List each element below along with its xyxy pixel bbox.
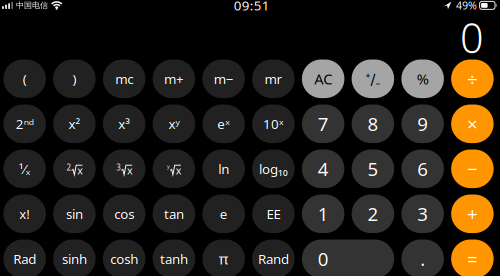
staticText: cosh bbox=[110, 250, 138, 268]
staticText: tan bbox=[164, 205, 184, 223]
button[interactable]: plus minus bbox=[352, 59, 394, 98]
button[interactable]: 9 bbox=[401, 104, 444, 143]
button[interactable]: tan bbox=[153, 194, 195, 233]
button[interactable]: x to the y bbox=[153, 104, 195, 143]
button[interactable]: m+ bbox=[153, 59, 195, 98]
staticText: sinh bbox=[62, 250, 87, 268]
button[interactable]: e bbox=[202, 194, 245, 233]
button[interactable]: pi bbox=[202, 239, 245, 276]
staticText: ʸ bbox=[167, 162, 170, 173]
staticText: 2 bbox=[367, 201, 378, 226]
button[interactable]: EE bbox=[252, 194, 295, 233]
staticText: . bbox=[420, 246, 425, 271]
button[interactable]: 3 bbox=[401, 194, 444, 233]
staticText: sin bbox=[66, 205, 83, 223]
staticText: x bbox=[77, 163, 83, 177]
staticText: 8 bbox=[367, 111, 378, 136]
button[interactable]: 4 bbox=[302, 149, 344, 188]
button[interactable]: minus bbox=[451, 149, 494, 188]
staticText: 6 bbox=[417, 156, 428, 181]
button[interactable]: one over x bbox=[3, 149, 46, 188]
button[interactable]: e to the x bbox=[202, 104, 245, 143]
button[interactable]: plus bbox=[451, 194, 494, 233]
button[interactable]: 2 bbox=[352, 194, 394, 233]
button[interactable]: Rand bbox=[252, 239, 295, 276]
staticText: AC bbox=[314, 69, 332, 89]
staticText: ) bbox=[72, 70, 76, 88]
button[interactable]: divide bbox=[451, 59, 494, 98]
staticText: 3 bbox=[417, 201, 428, 226]
button[interactable]: decimal point bbox=[401, 239, 444, 276]
staticText: mr bbox=[264, 70, 282, 88]
staticText: log₁₀ bbox=[259, 160, 288, 178]
staticText: ÷ bbox=[467, 66, 478, 91]
button[interactable]: mr bbox=[252, 59, 295, 98]
staticText: Rad bbox=[13, 250, 36, 268]
staticText: 09:51 bbox=[234, 0, 270, 14]
button[interactable]: cosh bbox=[103, 239, 145, 276]
button[interactable]: equals bbox=[451, 239, 494, 276]
button[interactable]: y root of x bbox=[153, 149, 195, 188]
button[interactable]: x cubed bbox=[103, 104, 145, 143]
button[interactable]: tanh bbox=[153, 239, 195, 276]
button[interactable]: sinh bbox=[53, 239, 96, 276]
button[interactable]: mc bbox=[103, 59, 145, 98]
staticText: m+ bbox=[164, 70, 184, 88]
staticText: x! bbox=[19, 205, 30, 223]
button[interactable]: square root of x bbox=[53, 149, 96, 188]
staticText: tanh bbox=[160, 250, 188, 268]
button[interactable]: 5 bbox=[352, 149, 394, 188]
button[interactable]: x factorial bbox=[3, 194, 46, 233]
button[interactable]: cos bbox=[103, 194, 145, 233]
staticText: 中国电信 bbox=[16, 0, 48, 10]
staticText: = bbox=[467, 246, 478, 271]
staticText: − bbox=[467, 156, 478, 181]
staticText: 3 bbox=[116, 162, 121, 173]
staticText: x bbox=[176, 163, 182, 177]
staticText: eˣ bbox=[217, 115, 230, 133]
button[interactable]: 8 bbox=[352, 104, 394, 143]
staticText: 0 bbox=[318, 246, 329, 271]
button[interactable]: 0 bbox=[302, 239, 394, 276]
button[interactable]: ln bbox=[202, 149, 245, 188]
button[interactable]: % bbox=[401, 59, 444, 98]
button[interactable]: ten to the x bbox=[252, 104, 295, 143]
staticText: ⁺∕₋ bbox=[365, 69, 380, 89]
button[interactable]: second bbox=[3, 104, 46, 143]
staticText: m− bbox=[214, 70, 234, 88]
staticText: 5 bbox=[367, 156, 378, 181]
staticText: + bbox=[467, 201, 478, 226]
button[interactable]: 7 bbox=[302, 104, 344, 143]
staticText: cos bbox=[114, 205, 134, 223]
staticText: x³ bbox=[118, 115, 130, 133]
staticText: 9 bbox=[417, 111, 428, 136]
button[interactable]: ( bbox=[3, 59, 46, 98]
staticText: xʸ bbox=[168, 115, 179, 133]
staticText: π bbox=[219, 249, 229, 269]
staticText: 2 bbox=[66, 162, 71, 173]
button[interactable]: AC bbox=[302, 59, 344, 98]
staticText: 4 bbox=[318, 156, 329, 181]
button[interactable]: ) bbox=[53, 59, 96, 98]
button[interactable]: multiply bbox=[451, 104, 494, 143]
staticText: EE bbox=[266, 205, 280, 223]
button[interactable]: sin bbox=[53, 194, 96, 233]
staticText: x bbox=[127, 163, 133, 177]
button[interactable]: Rad bbox=[3, 239, 46, 276]
staticText: 7 bbox=[318, 111, 329, 136]
staticText: 49% bbox=[456, 0, 477, 12]
staticText: ln bbox=[218, 160, 229, 178]
button[interactable]: m minus bbox=[202, 59, 245, 98]
button[interactable]: log base ten bbox=[252, 149, 295, 188]
button[interactable]: cube root of x bbox=[103, 149, 145, 188]
button[interactable]: x squared bbox=[53, 104, 96, 143]
button[interactable]: 1 bbox=[302, 194, 344, 233]
staticText: mc bbox=[115, 70, 133, 88]
staticText: × bbox=[467, 111, 478, 136]
staticText: Rand bbox=[258, 250, 289, 268]
staticText: 10ˣ bbox=[263, 115, 284, 133]
staticText: ¹⁄ₓ bbox=[19, 160, 31, 178]
button[interactable]: 6 bbox=[401, 149, 444, 188]
staticText: 1 bbox=[318, 201, 329, 226]
staticText: e bbox=[220, 205, 228, 223]
